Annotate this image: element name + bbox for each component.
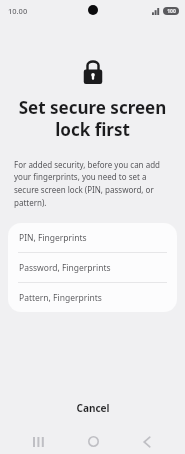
staticText: PIN, Fingerprints <box>19 232 87 244</box>
button[interactable]: PIN, Fingerprints <box>8 223 177 252</box>
staticText: Pattern, Fingerprints <box>19 292 102 304</box>
staticText: Cancel <box>76 401 110 415</box>
button[interactable]: Recent apps <box>22 429 54 454</box>
staticText: For added security, before you can add y… <box>14 159 171 209</box>
staticText: Set secure screen lock first <box>12 96 173 141</box>
button[interactable]: Home <box>77 429 109 454</box>
staticText: 10.00 <box>8 6 28 16</box>
button[interactable]: Cancel <box>0 391 185 425</box>
button[interactable]: Back <box>131 429 163 454</box>
staticText: Password, Fingerprints <box>19 262 111 274</box>
button[interactable]: Pattern, Fingerprints <box>8 283 177 312</box>
staticText: 100 <box>167 8 176 15</box>
button[interactable]: Password, Fingerprints <box>8 253 177 282</box>
